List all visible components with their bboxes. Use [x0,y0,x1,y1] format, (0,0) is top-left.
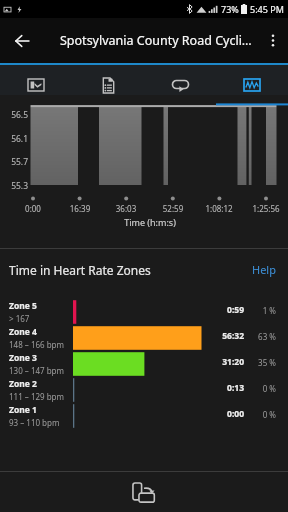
staticText: 0:00 [220,408,244,420]
staticText: Time (h:m:s) [6,216,288,228]
staticText: 56.1 [0,133,28,145]
staticText: 1:25:56 [244,203,288,214]
button[interactable]: Navigate up [0,18,44,63]
button[interactable]: Rotate screen [127,475,161,509]
staticText: 0 % [255,383,276,394]
staticText: Spotsylvania County Road Cycling [60,32,257,49]
button[interactable]: Summary [72,65,144,95]
staticText: Zone 1 [9,404,37,416]
staticText: 148 – 166 bpm [9,339,65,350]
staticText: 93 – 110 bpm [9,417,60,428]
button[interactable]: More options [257,18,288,63]
staticText: Zone 2 [9,378,37,390]
staticText: 0:00 [11,203,55,214]
staticText: 5:45 PM [250,3,284,15]
staticText: 31:20 [220,356,244,368]
staticText: 73% [221,3,239,15]
button[interactable]: Zone 5 [0,299,288,325]
button[interactable]: Map [0,65,72,95]
staticText: Time in Heart Rate Zones [9,262,246,278]
button[interactable]: Charts [216,65,288,95]
button[interactable]: Help [246,258,282,281]
button[interactable]: Laps [144,65,216,95]
staticText: 0 % [255,409,276,420]
button[interactable]: Zone 2 [0,377,288,403]
staticText: 16:39 [58,203,102,214]
staticText: 0:13 [220,382,244,394]
staticText: Zone 4 [9,326,37,338]
staticText: 52:59 [151,203,195,214]
staticText: 111 – 129 bpm [9,391,65,402]
staticText: 56.5 [0,109,28,121]
staticText: Help [252,262,276,277]
staticText: Zone 3 [9,352,37,364]
staticText: 35 % [255,357,276,368]
staticText: > 167 [9,313,30,324]
staticText: 36:03 [104,203,148,214]
button[interactable]: Zone 1 [0,403,288,429]
button[interactable]: Zone 3 [0,351,288,377]
staticText: 130 – 147 bpm [9,365,65,376]
staticText: 63 % [255,331,276,342]
button[interactable]: Zone 4 [0,325,288,351]
staticText: Zone 5 [9,300,37,312]
staticText: 55.7 [0,156,28,168]
staticText: 55.3 [0,180,28,192]
staticText: 56:32 [220,330,244,342]
staticText: 1:08:12 [197,203,241,214]
staticText: 1 % [255,305,276,316]
staticText: 0:59 [220,304,244,316]
